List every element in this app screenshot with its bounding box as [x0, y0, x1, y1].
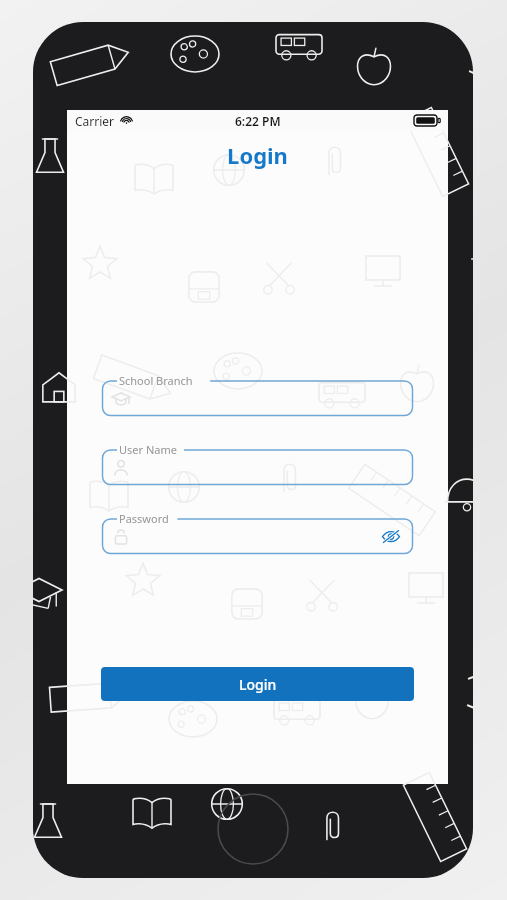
button[interactable]: Password	[101, 511, 414, 555]
button[interactable]: Login	[101, 667, 414, 701]
staticText: Password	[119, 511, 169, 526]
staticText: Login	[227, 140, 288, 170]
staticText: School Branch	[119, 373, 193, 388]
staticText: Carrier	[75, 113, 115, 129]
button[interactable]: User Name	[101, 442, 414, 486]
staticText: User Name	[119, 442, 177, 457]
staticText: 6:22 PM	[235, 113, 281, 129]
button[interactable]: School Branch	[101, 373, 414, 417]
button[interactable]: Home	[217, 793, 289, 865]
staticText: Login	[239, 675, 277, 694]
